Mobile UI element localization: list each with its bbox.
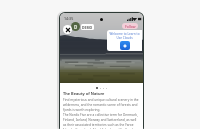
button[interactable]: Follow	[122, 23, 138, 29]
staticText: Welcome to Learn to Use Clouds	[109, 32, 140, 40]
staticText: 14:35	[64, 16, 74, 21]
button[interactable]: Account	[71, 22, 80, 31]
staticText: D	[74, 24, 78, 30]
button[interactable]: Close	[63, 25, 72, 34]
staticText: DEMO	[82, 25, 93, 30]
staticText: The Nordic Five are a collective term fo…	[63, 113, 140, 129]
staticText: The Beauty of Nature	[63, 91, 105, 96]
button[interactable]: DEMO	[82, 24, 93, 30]
staticText: Follow	[125, 24, 136, 29]
staticText: Find mysterious and unique cultural scen…	[63, 98, 140, 111]
button[interactable]: Welcome to Learn to Use Clouds	[107, 30, 142, 51]
